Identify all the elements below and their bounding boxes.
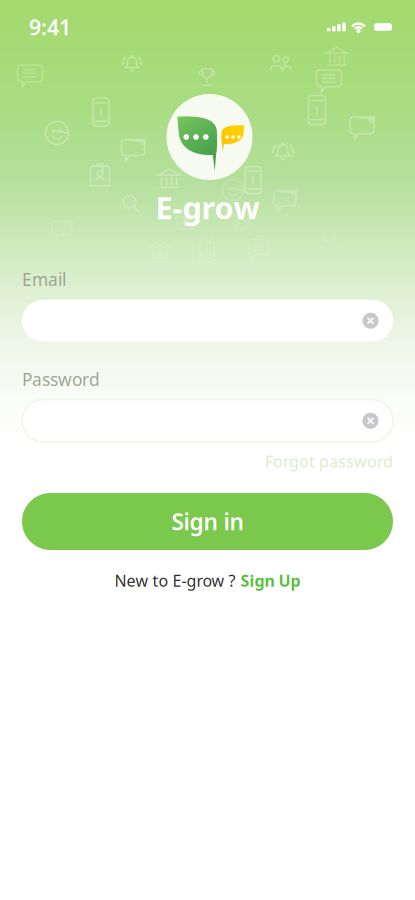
button[interactable]: New to E-grow ? (22, 550, 393, 591)
staticText: Password (22, 368, 100, 391)
button[interactable]: Forgot password (22, 442, 393, 472)
staticText: E-grow (155, 187, 259, 228)
button[interactable]: Sign in (22, 493, 393, 550)
staticText: Sign in (171, 506, 243, 537)
staticText: Email (22, 268, 66, 291)
staticText: Forgot password (265, 451, 393, 472)
staticText: New to E-grow ? (114, 570, 235, 591)
staticText: Sign Up (240, 570, 300, 591)
staticText: 9:41 (29, 13, 71, 41)
